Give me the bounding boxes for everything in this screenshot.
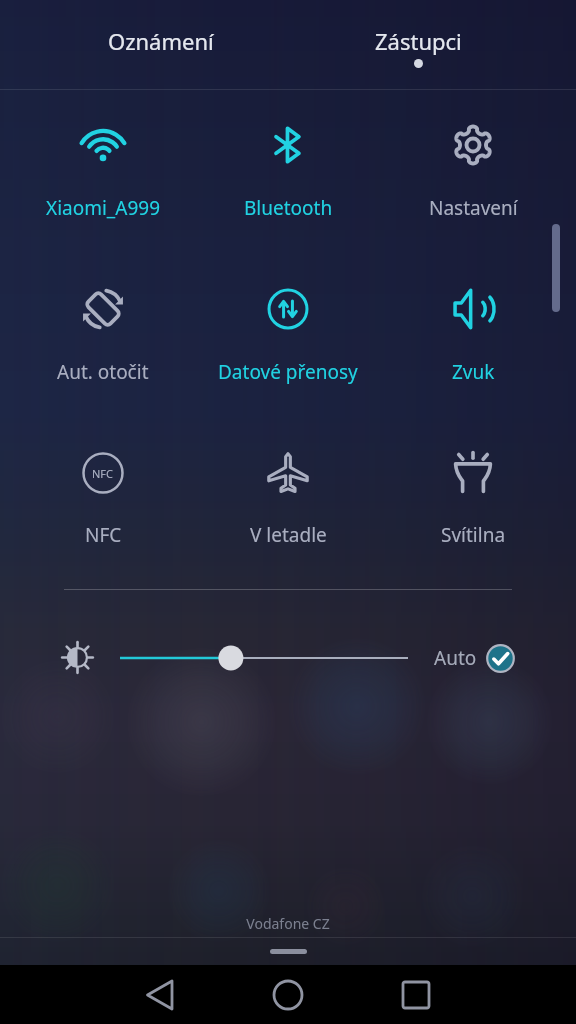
staticText: NFC (85, 522, 122, 548)
button[interactable]: Zvuk (379, 258, 567, 422)
staticText: Zástupci (375, 26, 462, 56)
button[interactable]: Xiaomi_A999 (9, 94, 197, 258)
staticText: Aut. otočit (57, 359, 149, 385)
button[interactable]: NFC (9, 422, 197, 586)
button[interactable]: Nastavení (379, 94, 567, 258)
button[interactable]: Bluetooth (194, 94, 382, 258)
button[interactable]: Home (248, 965, 328, 1024)
staticText: Auto (434, 645, 477, 671)
button[interactable]: Auto (434, 640, 515, 676)
staticText: Datové přenosy (218, 359, 358, 385)
staticText: V letadle (250, 522, 327, 548)
button[interactable]: Oznámení (80, 0, 242, 78)
button[interactable]: V letadle (194, 422, 382, 586)
button[interactable]: Zástupci (337, 0, 499, 78)
button[interactable]: Back (120, 965, 200, 1024)
other: Brightness (62, 642, 93, 673)
button[interactable]: Svítilna (379, 422, 567, 586)
staticText: Bluetooth (244, 195, 333, 221)
staticText: Zvuk (452, 359, 495, 385)
button[interactable]: Recents (376, 965, 456, 1024)
staticText: Vodafone CZ (0, 914, 576, 933)
button[interactable]: Aut. otočit (9, 258, 197, 422)
button[interactable]: Datové přenosy (194, 258, 382, 422)
staticText: NFC (92, 466, 114, 481)
staticText: Nastavení (429, 195, 518, 221)
staticText: Oznámení (108, 26, 214, 56)
staticText: Svítilna (441, 522, 506, 548)
staticText: Xiaomi_A999 (46, 195, 161, 221)
